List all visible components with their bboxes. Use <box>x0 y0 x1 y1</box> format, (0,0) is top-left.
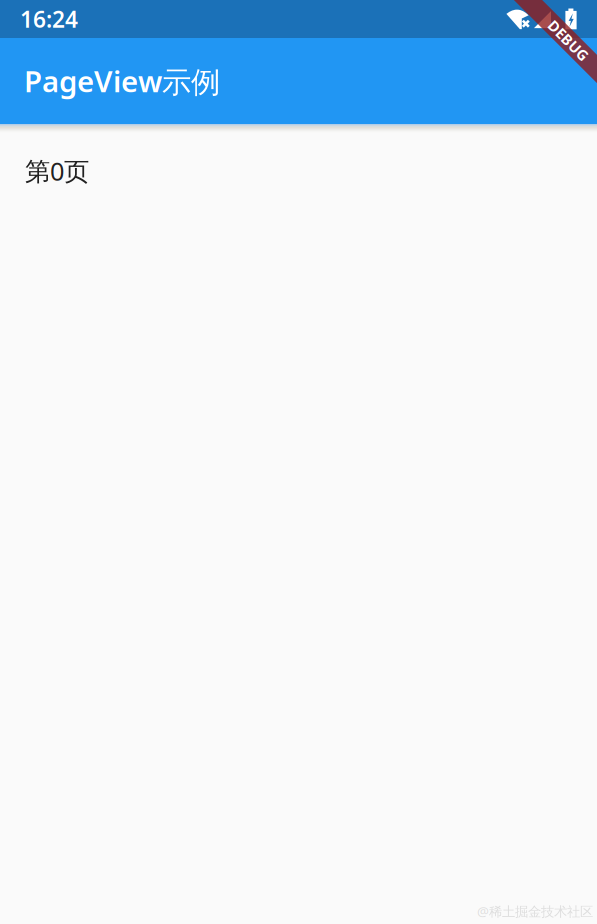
button[interactable]: PageView示例 <box>0 38 597 124</box>
staticText: DEBUG <box>545 26 596 45</box>
button[interactable]: 第0页 <box>0 133 597 188</box>
staticText: 16:24 <box>20 4 78 34</box>
staticText: 第0页 <box>25 154 89 188</box>
staticText: PageView示例 <box>24 61 220 100</box>
staticText: @稀土掘金技术社区 <box>477 902 593 920</box>
